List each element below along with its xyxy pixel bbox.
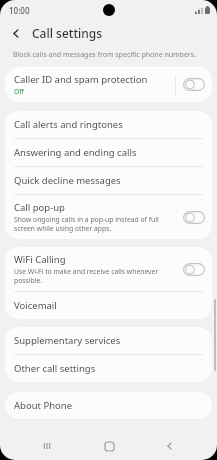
button[interactable]: Home [94,432,124,460]
button[interactable]: Back [7,24,25,42]
button[interactable]: Toggle [183,211,205,224]
staticText: Block calls and messages from specific p… [13,50,196,60]
button[interactable]: Caller ID and spam protection [5,67,212,102]
button[interactable]: Recents [32,432,62,460]
staticText: Answering and ending calls [14,146,137,159]
staticText: Show ongoing calls in a pop-up instead o… [14,215,178,233]
button[interactable]: Call pop-up [5,195,212,239]
staticText: Quick decline messages [14,174,121,187]
staticText: Other call settings [14,362,96,375]
staticText: About Phone [14,399,73,412]
staticText: Use Wi-Fi to make and receive calls when… [14,267,178,285]
button[interactable]: About Phone [5,392,212,419]
staticText: Call settings [32,25,103,41]
staticText: 10:00 [9,5,30,16]
button[interactable]: Quick decline messages [5,167,212,194]
staticText: Call pop-up [14,201,65,214]
button[interactable]: Toggle [183,263,205,276]
button[interactable]: Toggle [183,78,205,91]
staticText: WiFi Calling [14,253,66,266]
staticText: Supplementary services [14,334,121,347]
staticText: Call alerts and ringtones [14,118,123,131]
button[interactable]: Answering and ending calls [5,139,212,166]
staticText: Off [14,87,24,96]
button[interactable]: WiFi Calling [5,247,212,291]
button[interactable]: Back [155,432,185,460]
button[interactable]: Call alerts and ringtones [5,111,212,138]
staticText: Caller ID and spam protection [14,73,148,86]
staticText: Voicemail [14,299,57,312]
button[interactable]: Supplementary services [5,327,212,354]
button[interactable]: Other call settings [5,355,212,382]
button[interactable]: Voicemail [5,292,212,319]
